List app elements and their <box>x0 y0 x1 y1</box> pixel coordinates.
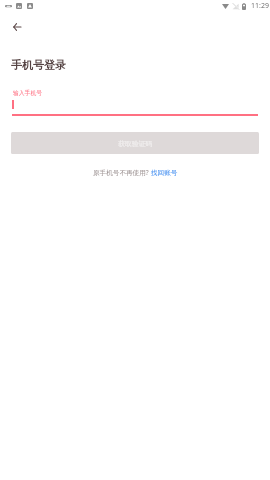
staticText: 原手机号不再使用? <box>93 168 151 177</box>
staticText: 找回账号 <box>151 169 178 177</box>
staticText: 手机号登录 <box>11 58 66 72</box>
staticText: 输入手机号 <box>13 89 42 96</box>
staticText: 获取验证码 <box>118 139 153 148</box>
button[interactable]: 找回账号 <box>151 169 178 177</box>
button[interactable]: 输入手机号 <box>12 85 258 116</box>
staticText: 11:29 <box>251 1 269 11</box>
button[interactable]: Back <box>6 16 27 37</box>
